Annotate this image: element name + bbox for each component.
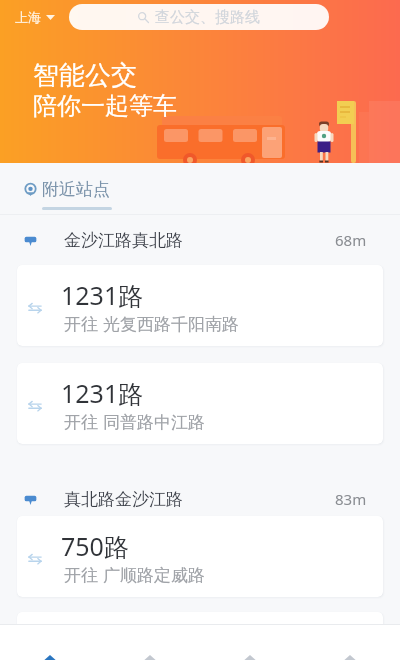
- staticText: 智能公交: [33, 59, 137, 92]
- button[interactable]: 路线: [100, 625, 200, 660]
- staticText: 开往: [64, 314, 98, 335]
- button[interactable]: 查公交、搜路线: [69, 4, 329, 30]
- staticText: 光复西路千阳南路: [103, 314, 239, 335]
- button[interactable]: 1231路: [17, 265, 383, 346]
- staticText: 同普路中江路: [103, 412, 205, 433]
- staticText: 开往: [64, 412, 98, 433]
- staticText: 广顺路定威路: [103, 565, 205, 586]
- staticText: 68m: [335, 230, 367, 250]
- button[interactable]: 真北路金沙江路: [0, 466, 400, 516]
- staticText: 开往: [64, 565, 98, 586]
- button[interactable]: 金沙江路真北路: [0, 215, 400, 265]
- button[interactable]: 上海: [13, 7, 57, 27]
- button[interactable]: 1231路: [17, 363, 383, 444]
- staticText: 金沙江路真北路: [64, 230, 183, 251]
- staticText: 陪你一起等车: [33, 91, 177, 121]
- button[interactable]: 附近站点: [24, 179, 110, 200]
- staticText: 上海: [15, 9, 41, 25]
- staticText: 真北路金沙江路: [64, 489, 183, 510]
- staticText: 附近站点: [42, 179, 110, 200]
- button[interactable]: 920路: [17, 612, 383, 660]
- staticText: 750路: [61, 529, 129, 563]
- staticText: 1231路: [61, 278, 144, 312]
- staticText: 83m: [335, 489, 367, 509]
- button[interactable]: 750路: [17, 516, 383, 597]
- button[interactable]: 发现: [200, 625, 300, 660]
- staticText: 1231路: [61, 376, 144, 410]
- button[interactable]: 首页: [0, 625, 100, 660]
- button[interactable]: 我的: [300, 625, 400, 660]
- staticText: 查公交、搜路线: [155, 8, 260, 27]
